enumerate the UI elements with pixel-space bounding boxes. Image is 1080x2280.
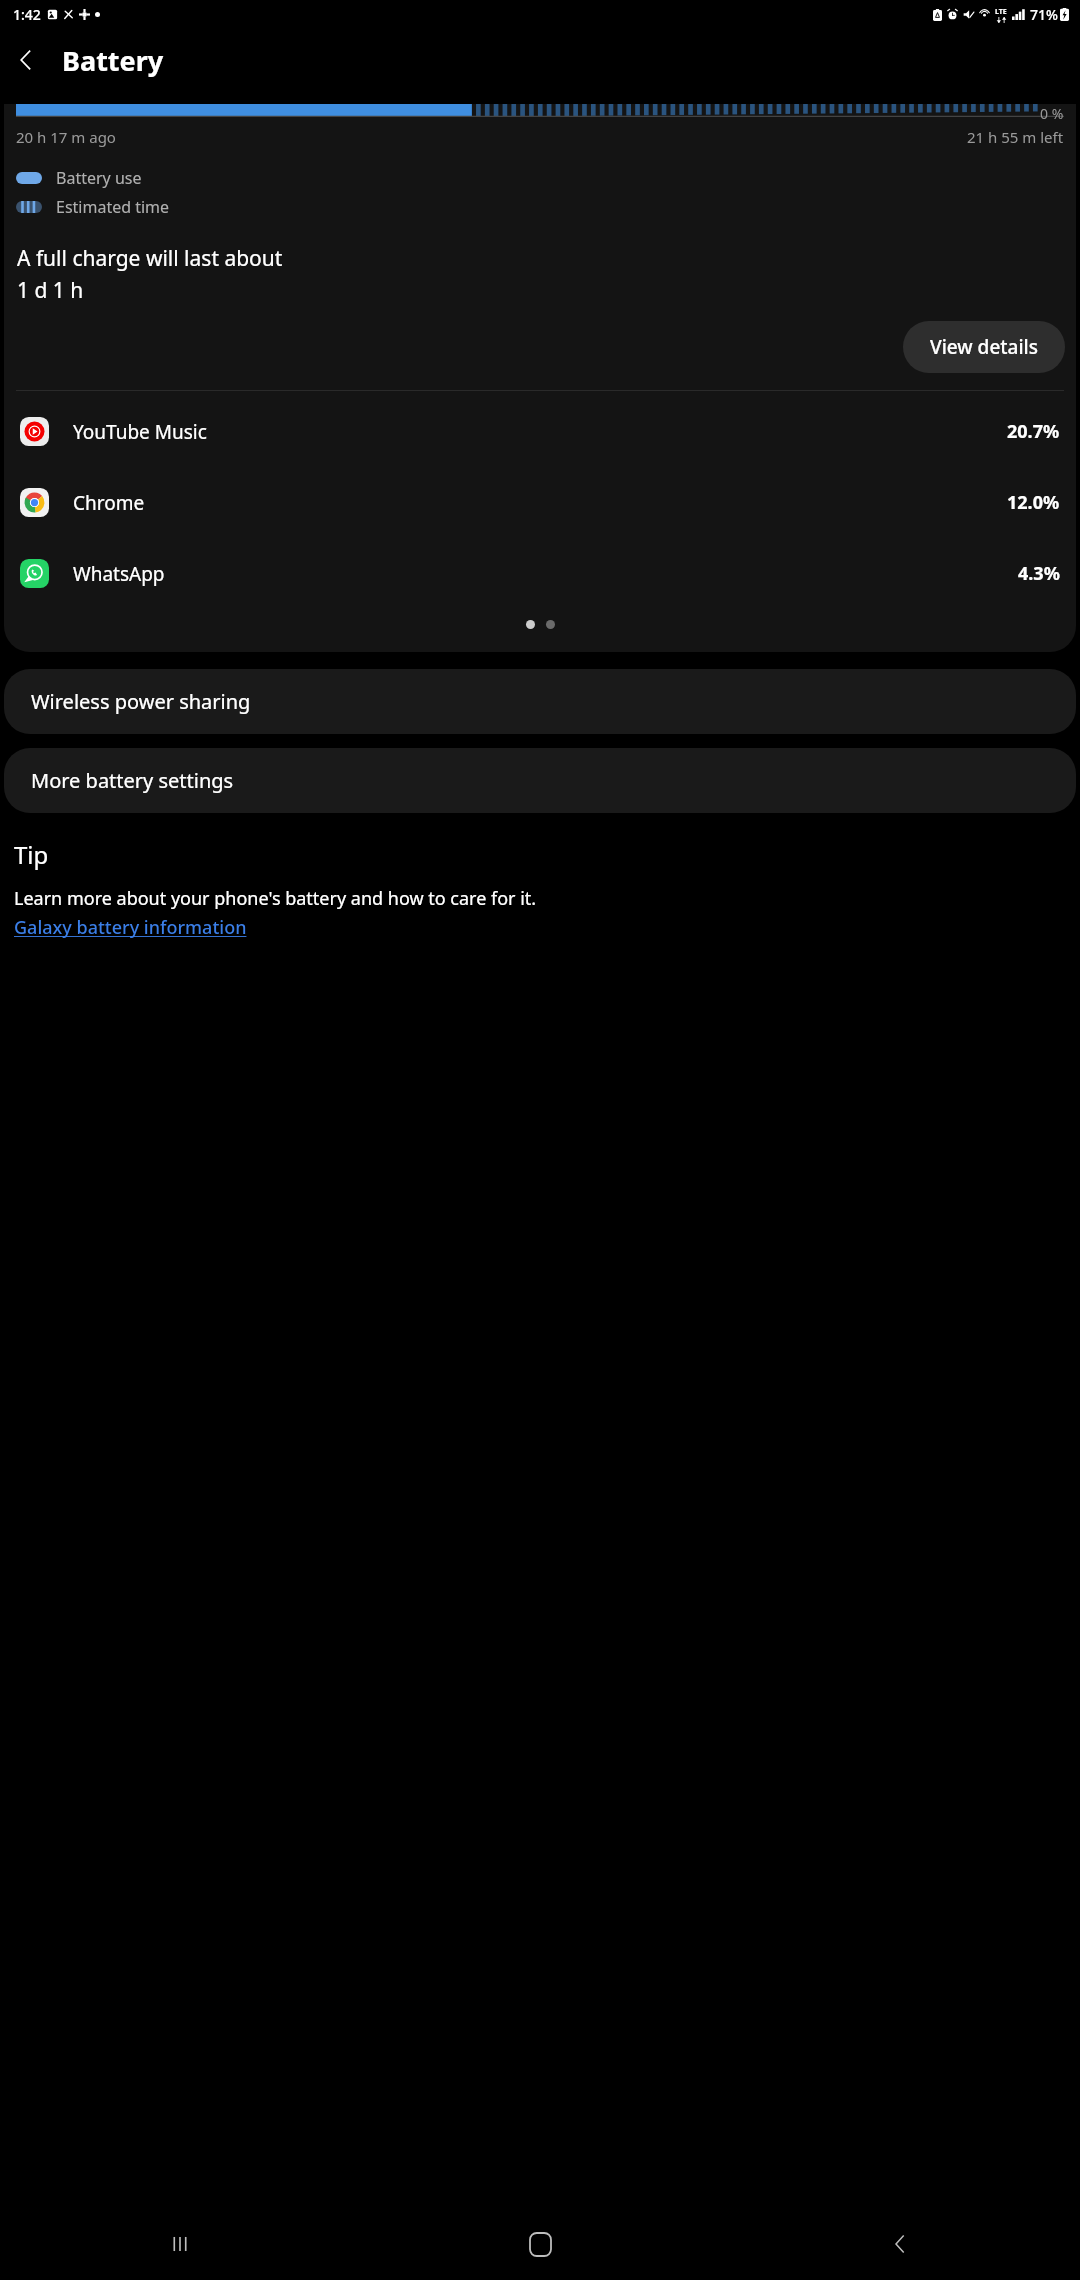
button[interactable]: Navigate up xyxy=(0,34,52,86)
staticText: YouTube Music xyxy=(73,419,207,445)
staticText: 1:42 xyxy=(13,5,41,24)
button[interactable]: More battery settings xyxy=(4,748,1076,813)
staticText: 20 h 17 m ago xyxy=(16,127,116,147)
staticText: Learn more about your phone's battery an… xyxy=(14,886,537,911)
staticText: Estimated time xyxy=(56,196,170,218)
button[interactable]: Recent apps xyxy=(0,2208,360,2280)
button[interactable]: Galaxy battery information xyxy=(14,915,247,940)
button[interactable]: Home xyxy=(360,2208,720,2280)
staticText: More battery settings xyxy=(31,767,234,794)
staticText: Galaxy battery information xyxy=(14,915,247,940)
staticText: Battery use xyxy=(56,167,142,189)
button[interactable]: Wireless power sharing xyxy=(4,669,1076,734)
staticText: 71% xyxy=(1030,5,1058,24)
staticText: 20.7% xyxy=(1007,419,1060,444)
staticText: Chrome xyxy=(73,490,145,516)
staticText: 21 h 55 m left xyxy=(967,127,1064,147)
staticText: Wireless power sharing xyxy=(31,688,251,715)
staticText: 0 % xyxy=(1040,104,1064,123)
staticText: 12.0% xyxy=(1007,490,1060,515)
button[interactable]: View details xyxy=(903,321,1065,373)
button[interactable]: Back xyxy=(720,2208,1080,2280)
staticText: LTE xyxy=(995,7,1007,17)
button[interactable]: WhatsApp xyxy=(4,538,1076,609)
button[interactable]: Chrome xyxy=(4,467,1076,538)
staticText: Tip xyxy=(14,838,49,871)
staticText: 1 d 1 h xyxy=(17,276,84,305)
staticText: Battery xyxy=(62,42,164,79)
staticText: WhatsApp xyxy=(73,561,165,587)
staticText: 4.3% xyxy=(1018,561,1060,586)
button[interactable]: YouTube Music xyxy=(4,396,1076,467)
staticText: View details xyxy=(930,334,1038,360)
staticText: A full charge will last about xyxy=(17,244,283,273)
